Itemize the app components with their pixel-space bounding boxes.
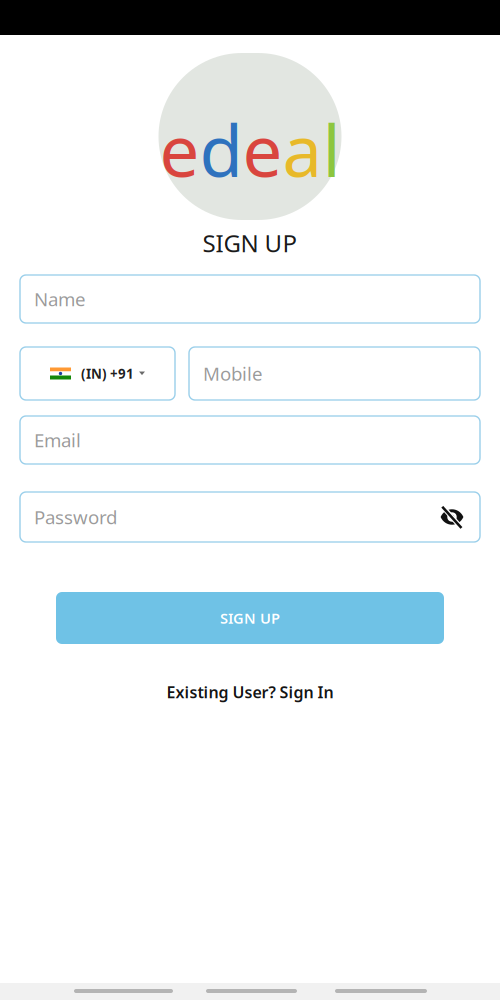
staticText: a (282, 103, 322, 196)
staticText: Email (34, 428, 81, 452)
button[interactable]: Recents (335, 989, 427, 993)
staticText: Password (34, 505, 117, 529)
button[interactable]: Back (74, 989, 173, 993)
button[interactable]: Home (206, 989, 297, 993)
staticText: Mobile (203, 361, 263, 386)
staticText: SIGN UP (202, 227, 297, 259)
button[interactable]: Name (20, 275, 480, 323)
staticText: e (159, 103, 199, 196)
staticText: Existing User? Sign In (166, 681, 333, 703)
button[interactable]: Existing User? Sign In (166, 681, 333, 703)
staticText: d (199, 103, 242, 196)
staticText: l (322, 103, 340, 196)
staticText: SIGN UP (220, 608, 280, 628)
button[interactable]: Password (20, 492, 480, 542)
staticText: e (242, 103, 282, 196)
button[interactable]: (IN) +91 (20, 347, 175, 400)
button[interactable]: Mobile (189, 347, 480, 400)
staticText: (IN) +91 (81, 365, 134, 382)
button[interactable]: Email (20, 416, 480, 464)
button[interactable]: SIGN UP (56, 592, 444, 644)
staticText: Name (34, 287, 86, 311)
